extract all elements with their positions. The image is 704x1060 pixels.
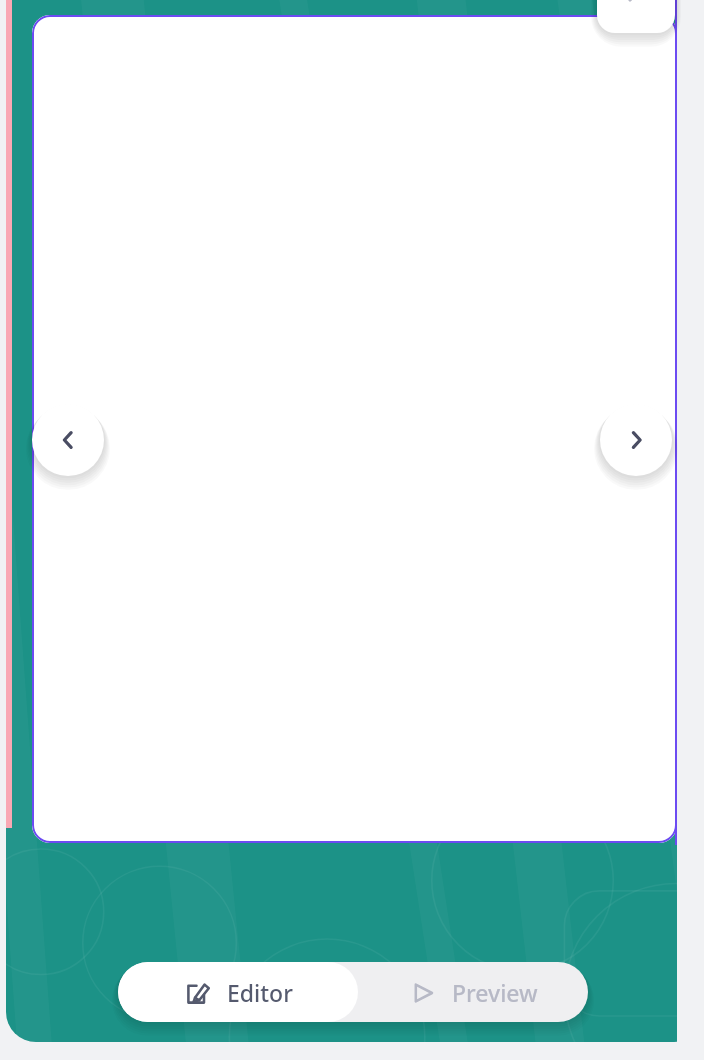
button[interactable]: Editor <box>118 962 358 1022</box>
button[interactable]: Previous <box>32 404 104 476</box>
button[interactable]: Open in new <box>597 0 675 33</box>
staticText: Editor <box>227 977 293 1008</box>
button[interactable]: Preview <box>358 962 588 1022</box>
button[interactable]: Next <box>600 404 672 476</box>
staticText: Preview <box>452 977 538 1008</box>
